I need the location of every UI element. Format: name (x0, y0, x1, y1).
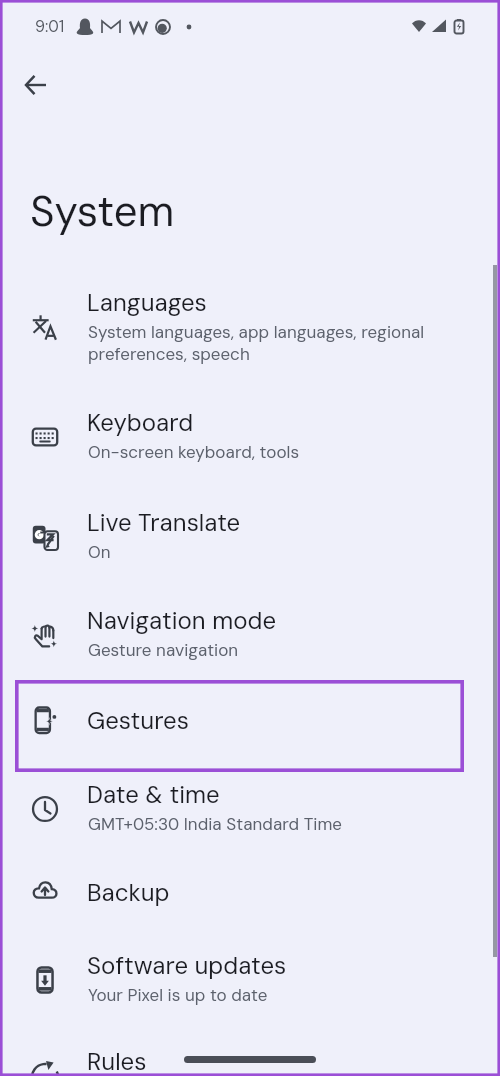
button[interactable] (3, 930, 497, 1030)
button[interactable] (3, 386, 497, 486)
staticText: Rules (87, 1046, 147, 1076)
button[interactable]: System (30, 184, 175, 239)
staticText: On-screen keyboard, tools (88, 441, 300, 463)
staticText: Gesture navigation (88, 639, 239, 661)
button[interactable]: Back (15, 64, 57, 106)
staticText: System languages, app languages, regiona… (88, 321, 425, 343)
staticText: Navigation mode (87, 605, 277, 636)
button[interactable] (3, 486, 497, 584)
button[interactable] (3, 680, 497, 772)
staticText: Your Pixel is up to date (88, 984, 268, 1006)
staticText: 9:01 (35, 16, 65, 37)
button[interactable] (3, 1030, 497, 1076)
staticText: Live Translate (87, 507, 241, 538)
staticText: preferences, speech (88, 343, 250, 365)
staticText: Keyboard (87, 407, 194, 438)
staticText: Software updates (87, 950, 287, 981)
staticText: GMT+05:30 India Standard Time (88, 813, 342, 835)
staticText: System (30, 184, 175, 239)
button[interactable] (3, 856, 497, 930)
button[interactable] (3, 772, 497, 856)
staticText: Languages (87, 287, 207, 318)
staticText: On (88, 541, 111, 563)
staticText: Date & time (87, 779, 220, 810)
staticText: Gestures (87, 705, 189, 736)
staticText: Backup (87, 877, 170, 908)
button[interactable] (15, 680, 464, 772)
button[interactable] (3, 266, 497, 386)
button[interactable] (3, 584, 497, 684)
